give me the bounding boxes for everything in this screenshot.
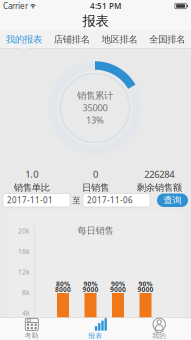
staticText: 日销售 [82,182,109,193]
staticText: 35000 [82,101,107,114]
button[interactable]: 考勤 [0,318,64,340]
button[interactable]: 2017-11-06 [83,193,150,207]
staticText: 查询 [163,194,181,206]
staticText: 4:51 PM [90,1,121,11]
staticText: 4k [22,309,30,317]
staticText: 90% [111,280,125,288]
staticText: 每日销售 [77,225,113,236]
staticText: 我的 [152,332,166,340]
staticText: 报表 [88,332,102,340]
staticText: 全国排名 [149,34,185,45]
staticText: 我的报表 [6,34,42,45]
staticText: 20k [18,227,30,235]
button[interactable]: 2017-11-01 [3,193,70,207]
staticText: 8000 [55,285,71,294]
staticText: 9000 [82,285,98,294]
button[interactable]: 地区排名 [95,30,143,49]
staticText: 考勤 [25,331,39,340]
staticText: 剩余销售额 [137,182,182,193]
staticText: 13% [86,114,104,126]
staticText: 9000 [110,285,126,294]
staticText: 店铺排名 [54,34,90,45]
staticText: 9000 [137,285,153,294]
staticText: 销售单比 [14,182,50,193]
button[interactable]: 查询 [157,193,188,207]
staticText: 80% [56,280,70,288]
staticText: 至 [72,195,80,205]
staticText: 8k [22,288,30,297]
button[interactable]: 全国排名 [143,30,191,49]
button[interactable]: 店铺排名 [48,30,96,49]
staticText: 销售累计 [77,90,113,101]
staticText: 226284 [144,168,174,180]
staticText: 0 [93,168,98,180]
staticText: 90% [83,280,97,288]
button[interactable]: 我的 [127,318,191,340]
staticText: 地区排名 [101,34,137,45]
staticText: Carrier [3,1,28,11]
staticText: 1.0 [25,168,38,180]
staticText: 16k [18,247,30,256]
staticText: 90% [138,280,152,288]
staticText: 12k [18,268,30,276]
staticText: 报表 [82,13,108,29]
button[interactable]: 报表 [64,318,127,340]
button[interactable]: 我的报表 [0,30,48,49]
staticText: 2017-11-06 [87,195,133,205]
staticText: 2017-11-01 [7,195,53,205]
